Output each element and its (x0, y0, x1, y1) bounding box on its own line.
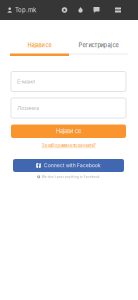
staticText: Најави се (56, 128, 81, 135)
button[interactable]: Messages (88, 0, 104, 20)
button[interactable]: Connect with Facebook (13, 159, 124, 172)
button[interactable]: Trending (72, 0, 88, 20)
staticText: Регистрирај се (78, 42, 118, 48)
button[interactable]: Menu (109, 0, 126, 20)
button[interactable]: Top.mk (0, 0, 40, 20)
button[interactable]: За заборавена лозинката? (11, 142, 126, 149)
staticText: Top.mk (15, 6, 36, 14)
button[interactable]: Регистрирај се (69, 20, 128, 56)
staticText: Connect with Facebook (44, 162, 101, 168)
button[interactable]: Најави се (10, 20, 69, 56)
staticText: Најави се (27, 42, 51, 48)
staticText: Лозинка (17, 105, 39, 111)
staticText: We don't post anything to Facebook (42, 175, 100, 179)
staticText: Е-маил (17, 78, 35, 85)
staticText: За заборавена лозинката? (41, 143, 95, 148)
button[interactable]: Top rated (56, 0, 72, 20)
button[interactable]: Најави се (11, 124, 126, 138)
